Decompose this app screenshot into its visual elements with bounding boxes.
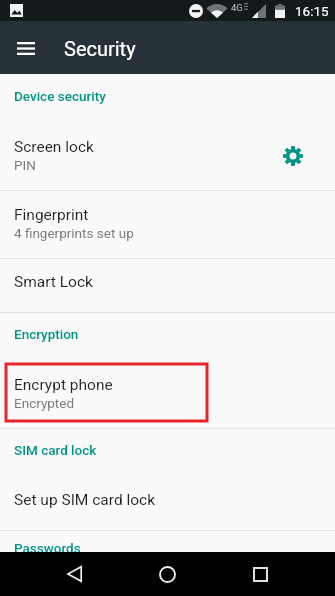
button[interactable]: Home [149, 552, 186, 596]
button[interactable]: Back [56, 552, 93, 596]
staticText: Security [64, 37, 136, 60]
staticText: PIN [14, 157, 36, 173]
button[interactable]: Smart Lock [0, 258, 335, 312]
staticText: Fingerprint [14, 206, 89, 224]
staticText: 4 fingerprints set up [14, 225, 134, 241]
button[interactable]: Set up SIM card lock [0, 476, 335, 530]
staticText: Encrypted [14, 395, 75, 411]
button[interactable]: Recent apps [242, 552, 279, 596]
staticText: Device security [14, 88, 106, 104]
button[interactable]: Screen lock settings [275, 138, 311, 174]
staticText: Encrypt phone [14, 376, 113, 394]
button[interactable]: Screen lock [0, 122, 335, 190]
button[interactable]: Fingerprint [0, 190, 335, 258]
staticText: Encryption [14, 326, 79, 342]
staticText: SIM card lock [14, 442, 97, 458]
button[interactable]: Encrypt phone [0, 360, 335, 428]
staticText: Passwords [14, 540, 81, 556]
staticText: Set up SIM card lock [14, 491, 156, 509]
button[interactable]: Open navigation drawer [8, 30, 44, 66]
staticText: Screen lock [14, 138, 94, 156]
staticText: Smart Lock [14, 273, 93, 291]
staticText: 4G [231, 2, 243, 13]
staticText: 16:15 [295, 3, 329, 19]
